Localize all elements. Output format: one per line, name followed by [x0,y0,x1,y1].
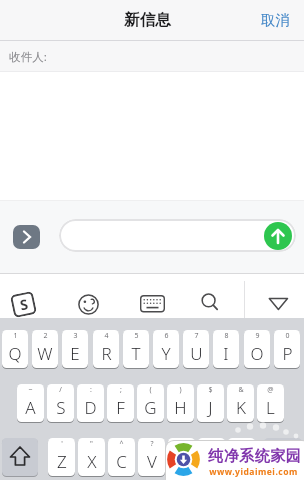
button[interactable]: … [198,438,225,476]
staticText: & [238,385,244,395]
staticText: ? [150,439,154,449]
button[interactable]: ' [48,438,75,476]
staticText: Y [161,342,171,365]
staticText: O [250,342,264,365]
staticText: A [25,396,36,419]
button[interactable] [59,219,296,252]
staticText: E [70,342,80,365]
staticText: S [56,396,66,419]
button[interactable]: 9 [244,330,270,368]
staticText: 2 [43,331,48,341]
staticText: Z [57,450,67,473]
button[interactable]: 3 [62,330,88,368]
staticText: L [266,396,275,419]
staticText: V [147,450,157,473]
staticText: K [236,396,246,419]
button[interactable]: 收件人: [0,41,304,72]
button[interactable] [78,294,99,315]
staticText: : [90,385,92,395]
button[interactable]: ; [107,384,134,422]
staticText: D [84,396,97,419]
staticText: X [87,450,97,473]
staticText: R [101,342,112,365]
button[interactable]: / [47,384,74,422]
staticText: 7 [194,331,199,341]
button[interactable]: 0 [274,330,300,368]
staticText: 8 [224,331,229,341]
button[interactable]: , [228,438,255,476]
button[interactable]: 7 [183,330,209,368]
staticText: ! [181,439,183,449]
staticText: S [18,294,30,314]
staticText: 取消 [261,11,290,29]
staticText: 5 [134,331,139,341]
button[interactable]: ( [137,384,164,422]
button[interactable] [266,294,291,314]
staticText: " [90,439,93,449]
staticText: / [59,385,62,395]
button[interactable]: " [78,438,105,476]
button[interactable]: 取消 [261,11,290,29]
staticText: H [174,396,187,419]
staticText: $ [208,385,213,395]
button[interactable]: 6 [153,330,179,368]
staticText: ( [149,385,152,395]
staticText: 9 [255,331,260,341]
button[interactable]: 纯净系统家园 [166,441,304,480]
button[interactable]: ! [168,438,195,476]
button[interactable] [2,438,38,476]
staticText: 6 [164,331,169,341]
staticText: ~ [28,385,33,395]
staticText: N [205,450,218,473]
staticText: , [241,439,243,449]
staticText: M [234,450,249,473]
button[interactable] [140,295,165,313]
staticText: www.yidaimei.com [209,466,298,478]
button[interactable]: @ [257,384,284,422]
staticText: T [131,342,141,365]
staticText: ^ [119,439,124,449]
staticText: @ [267,385,274,395]
staticText: Q [8,342,22,365]
button[interactable]: 2 [32,330,58,368]
button[interactable] [13,225,40,249]
staticText: 0 [285,331,290,341]
staticText: 1 [13,331,18,341]
button[interactable]: : [77,384,104,422]
staticText: W [37,342,53,365]
staticText: U [190,342,203,365]
staticText: 新信息 [124,10,171,30]
staticText: 4 [104,331,109,341]
button[interactable] [264,222,292,250]
staticText: 收件人: [9,49,47,65]
button[interactable]: ~ [17,384,44,422]
button[interactable]: ? [138,438,165,476]
staticText: 纯净系统家园 [208,447,301,466]
staticText: I [223,342,229,365]
button[interactable]: $ [197,384,224,422]
staticText: J [208,396,213,419]
staticText: 3 [73,331,78,341]
button[interactable]: 5 [123,330,149,368]
staticText: C [116,450,127,473]
button[interactable]: ^ [108,438,135,476]
staticText: F [116,396,125,419]
button[interactable] [201,293,220,312]
staticText: … [209,439,215,449]
staticText: ; [120,385,122,395]
button[interactable] [264,438,302,476]
button[interactable]: S [10,291,37,318]
button[interactable]: 8 [213,330,239,368]
button[interactable]: & [227,384,254,422]
button[interactable]: ) [167,384,194,422]
staticText: G [144,396,157,419]
staticText: B [176,450,187,473]
button[interactable]: 4 [93,330,119,368]
staticText: ' [61,439,63,449]
staticText: P [282,342,293,365]
staticText: ) [179,385,182,395]
button[interactable]: 1 [2,330,28,368]
